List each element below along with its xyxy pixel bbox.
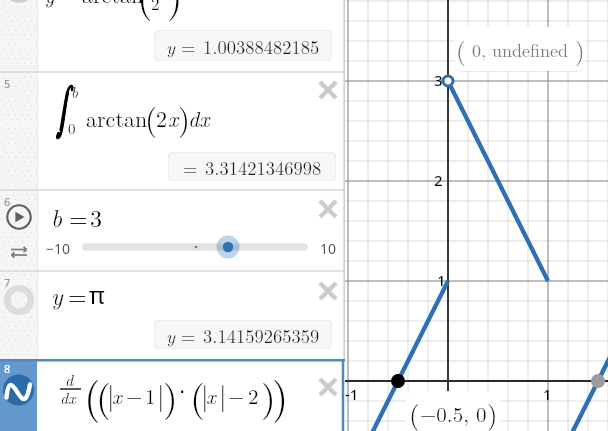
button[interactable]: Toggle visibility	[4, 285, 34, 315]
button[interactable]: Toggle visibility	[4, 0, 34, 3]
button[interactable]: y	[154, 30, 332, 61]
button[interactable]: Delete expression	[317, 280, 339, 302]
staticText: 3.31421346998	[205, 154, 322, 180]
staticText: 10	[320, 239, 337, 258]
staticText: (	[137, 0, 153, 23]
staticText: )	[272, 365, 289, 425]
button[interactable]: Delete expression	[317, 79, 339, 101]
staticText: 3	[90, 200, 102, 234]
staticText: =	[68, 278, 87, 312]
staticText: 2	[248, 380, 259, 410]
staticText: dx	[188, 102, 210, 133]
staticText: 2	[151, 0, 160, 15]
staticText: 1	[437, 270, 446, 290]
button[interactable]: Play slider animation	[6, 204, 32, 230]
staticText: (	[456, 32, 466, 67]
staticText: (	[96, 368, 111, 422]
staticText: arctan	[82, 0, 144, 9]
staticText: )	[575, 32, 585, 67]
button[interactable]: =	[168, 152, 336, 181]
staticText: −0.5, 0	[420, 398, 487, 428]
staticText: |	[219, 375, 227, 413]
staticText: y	[166, 322, 175, 348]
staticText: 1.00388482185	[203, 33, 320, 59]
staticText: -1	[345, 384, 359, 404]
staticText: −	[126, 380, 143, 410]
staticText: )	[163, 368, 178, 422]
staticText: y	[44, 0, 55, 9]
button[interactable]: Delete expression	[317, 198, 339, 220]
staticText: arctan	[86, 102, 148, 133]
button[interactable]: (	[406, 391, 500, 431]
staticText: |	[107, 375, 115, 413]
staticText: x	[168, 102, 179, 133]
staticText: b	[71, 81, 78, 102]
staticText: (	[145, 95, 158, 139]
staticText: =	[183, 154, 198, 180]
button[interactable]: Change slider direction	[10, 245, 28, 259]
staticText: (	[190, 368, 205, 422]
staticText: −	[228, 380, 245, 410]
staticText: 2	[434, 170, 443, 190]
staticText: 3	[434, 70, 443, 90]
staticText: dx	[60, 386, 76, 409]
staticText: x	[112, 380, 122, 410]
staticText: d	[65, 368, 74, 391]
staticText: =	[181, 322, 196, 348]
staticText: x	[206, 380, 216, 410]
button[interactable]: Delete expression	[317, 376, 339, 398]
staticText: 0, undefined	[466, 37, 575, 63]
staticText: −10	[46, 239, 71, 258]
button[interactable]: (	[455, 27, 585, 71]
staticText: |	[157, 375, 165, 413]
staticText: (	[84, 365, 101, 425]
staticText: y	[51, 278, 63, 312]
staticText: =	[181, 33, 196, 59]
staticText: 5	[4, 76, 11, 91]
staticText: 2	[156, 102, 168, 133]
staticText: 7	[4, 275, 11, 290]
staticText: y	[166, 33, 175, 59]
staticText: 0	[68, 117, 76, 138]
staticText: =	[69, 200, 88, 234]
staticText: 8	[4, 361, 11, 376]
staticText: b	[51, 200, 63, 234]
staticText: 1	[145, 380, 156, 410]
staticText: ⋅	[179, 380, 186, 404]
staticText: )	[167, 0, 183, 23]
staticText: |	[201, 375, 209, 413]
staticText: 3.14159265359	[203, 322, 320, 348]
staticText: )	[261, 368, 276, 422]
button[interactable]: y	[154, 320, 332, 349]
staticText: 1	[543, 384, 552, 404]
staticText: π	[89, 278, 105, 311]
staticText: )	[487, 394, 498, 431]
staticText: 6	[4, 194, 11, 209]
staticText: (	[409, 394, 420, 431]
staticText: )	[178, 95, 191, 139]
